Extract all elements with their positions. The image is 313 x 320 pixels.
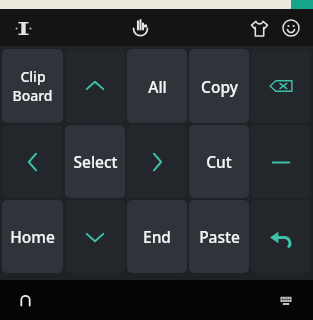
staticText: Copy — [201, 76, 238, 97]
button[interactable]: Back — [10, 285, 40, 315]
staticText: Clip — [20, 67, 46, 86]
button[interactable]: Enter — [251, 200, 311, 273]
button[interactable]: Clip — [2, 49, 63, 123]
button[interactable]: Theme — [243, 12, 275, 44]
staticText: All — [148, 76, 167, 97]
button[interactable]: Emoji — [275, 12, 307, 44]
staticText: Select — [73, 151, 118, 172]
button[interactable]: Space — [251, 125, 311, 198]
staticText: End — [143, 226, 171, 247]
button[interactable]: Backspace — [251, 49, 311, 123]
button[interactable]: Move up — [65, 49, 125, 123]
button[interactable]: All — [127, 49, 187, 123]
button[interactable]: Move down — [65, 200, 125, 273]
button[interactable]: Touch input — [124, 12, 156, 44]
button[interactable]: End — [127, 200, 187, 273]
staticText: Home — [10, 226, 55, 247]
button[interactable]: Copy — [189, 49, 249, 123]
button[interactable]: Move right — [127, 125, 187, 198]
button[interactable]: Text cursor — [8, 13, 38, 43]
button[interactable]: Home — [2, 200, 63, 273]
button[interactable]: Cut — [189, 125, 249, 198]
staticText: Board — [12, 86, 53, 105]
button[interactable]: Move left — [2, 125, 63, 198]
staticText: Paste — [199, 226, 240, 247]
staticText: Cut — [206, 151, 232, 172]
button[interactable]: Select — [65, 125, 125, 198]
button[interactable]: Paste — [189, 200, 249, 273]
button[interactable]: Switch keyboard — [271, 285, 301, 315]
